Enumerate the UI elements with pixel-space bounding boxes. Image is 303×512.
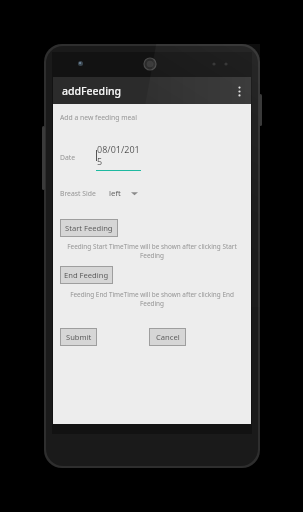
staticText: Feeding Start TimeTime will be shown aft…	[60, 242, 244, 260]
staticText: Add a new feeding meal	[60, 113, 137, 122]
staticText: Start Feeding	[65, 223, 113, 233]
button[interactable]: Submit	[60, 328, 97, 346]
button[interactable]: Cancel	[149, 328, 186, 346]
button[interactable]: End Feeding	[60, 266, 113, 284]
staticText: Date	[60, 153, 96, 162]
button[interactable]: More options	[227, 79, 251, 103]
button[interactable]: 08/01/2015	[96, 143, 141, 171]
button[interactable]: left	[109, 188, 138, 199]
staticText: 08/01/2015	[97, 143, 141, 167]
staticText: End Feeding	[64, 270, 109, 280]
staticText: addFeeding	[62, 84, 122, 98]
staticText: Feeding End TimeTime will be shown after…	[60, 290, 244, 308]
staticText: Cancel	[156, 332, 180, 342]
staticText: left	[109, 188, 121, 199]
staticText: Submit	[66, 332, 92, 342]
button[interactable]: Start Feeding	[60, 219, 118, 237]
staticText: Breast Side	[60, 189, 109, 198]
